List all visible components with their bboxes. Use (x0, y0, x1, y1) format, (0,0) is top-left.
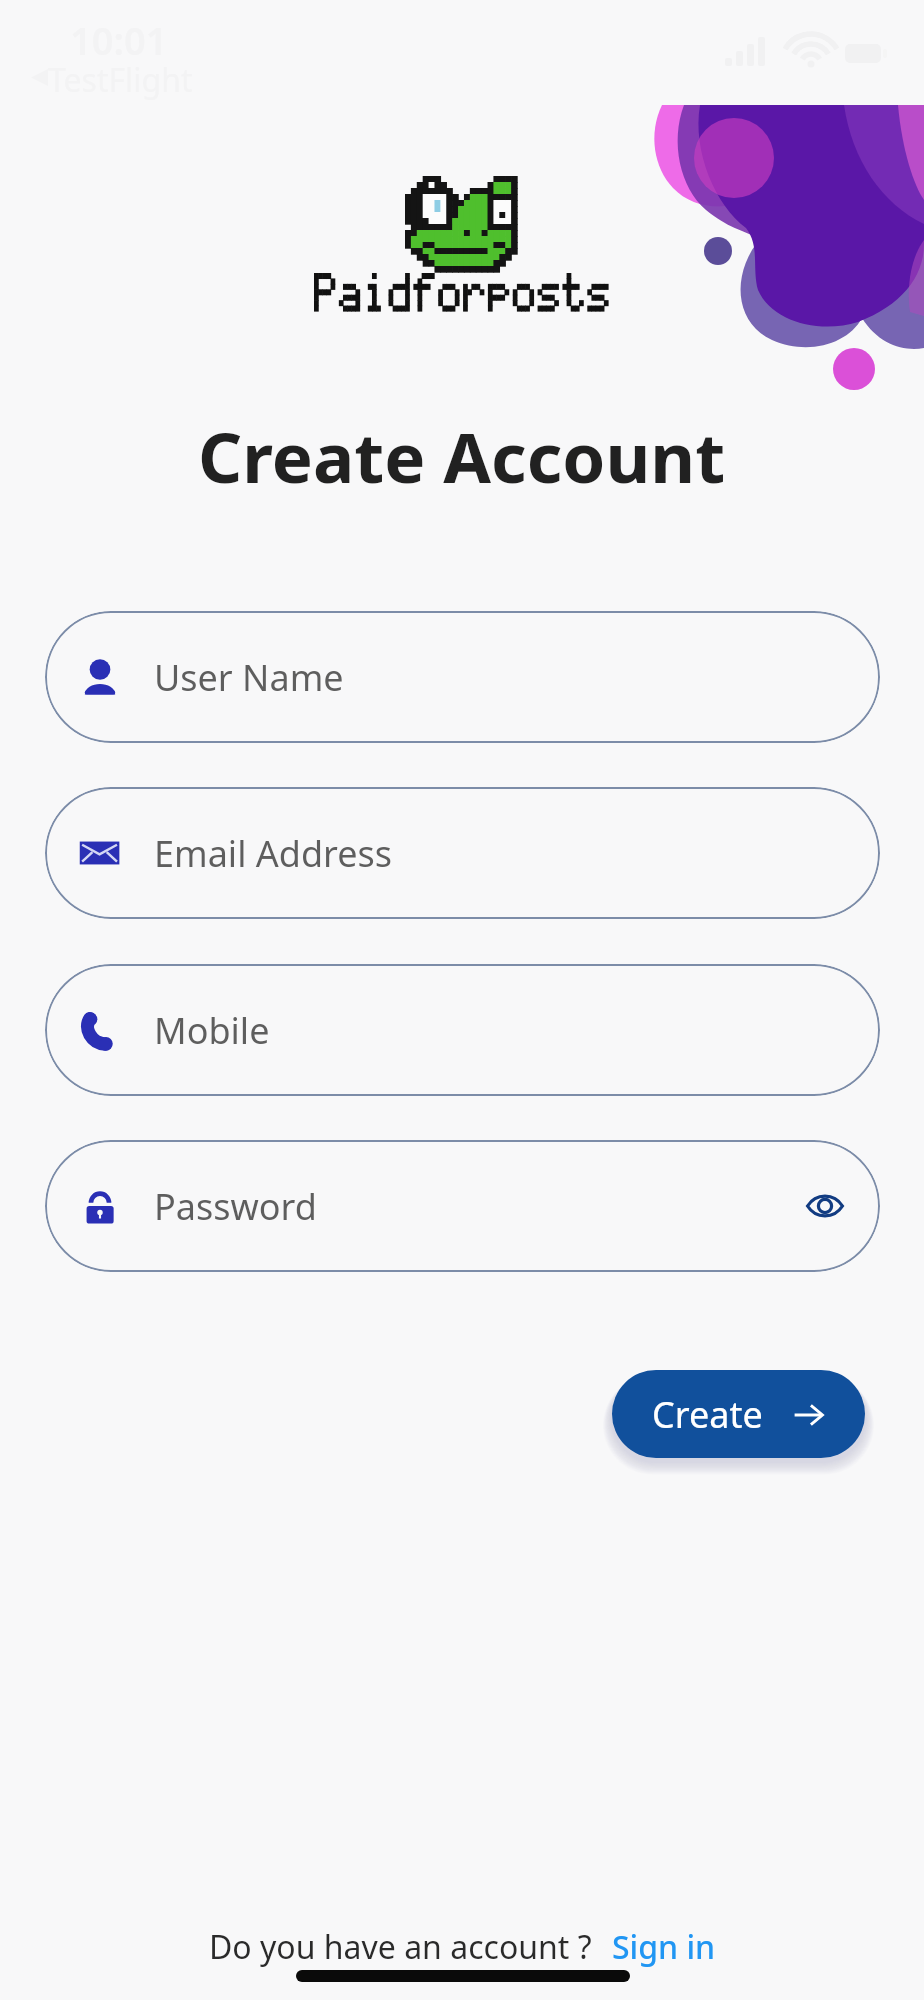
staticText: Email Address (154, 829, 393, 878)
button[interactable]: Sign in (612, 1924, 716, 1970)
button[interactable]: Create (612, 1370, 865, 1458)
button[interactable]: Mobile (45, 964, 880, 1096)
button[interactable]: Email Address (45, 787, 880, 919)
staticText: Sign in (612, 1925, 716, 1969)
button[interactable]: Show password (798, 1179, 852, 1233)
staticText: Create Account (198, 409, 726, 503)
staticText: Do you have an account ? (209, 1925, 592, 1969)
staticText: Mobile (154, 1006, 270, 1055)
button[interactable]: User Name (45, 611, 880, 743)
staticText: Password (154, 1182, 317, 1231)
staticText: User Name (154, 653, 344, 702)
button[interactable]: Password (45, 1140, 880, 1272)
staticText: Create (652, 1390, 763, 1439)
